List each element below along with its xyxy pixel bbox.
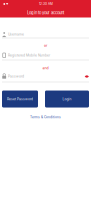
staticText: and: [42, 66, 48, 70]
staticText: Reset Password: [7, 97, 33, 101]
button[interactable]: Terms & Conditions: [30, 115, 61, 119]
staticText: Terms & Conditions: [30, 115, 61, 119]
staticText: or: [44, 43, 47, 48]
staticText: Password: [8, 74, 24, 78]
staticText: 12:30 AM: [39, 2, 53, 6]
staticText: Login to your account: [27, 10, 64, 15]
button[interactable]: Login: [45, 90, 89, 107]
staticText: Login: [62, 97, 71, 101]
staticText: Username: [8, 32, 24, 36]
button[interactable]: Reset Password: [2, 90, 38, 107]
button[interactable]: Show password: [85, 75, 89, 78]
staticText: Registered Mobile Number: [8, 53, 50, 57]
